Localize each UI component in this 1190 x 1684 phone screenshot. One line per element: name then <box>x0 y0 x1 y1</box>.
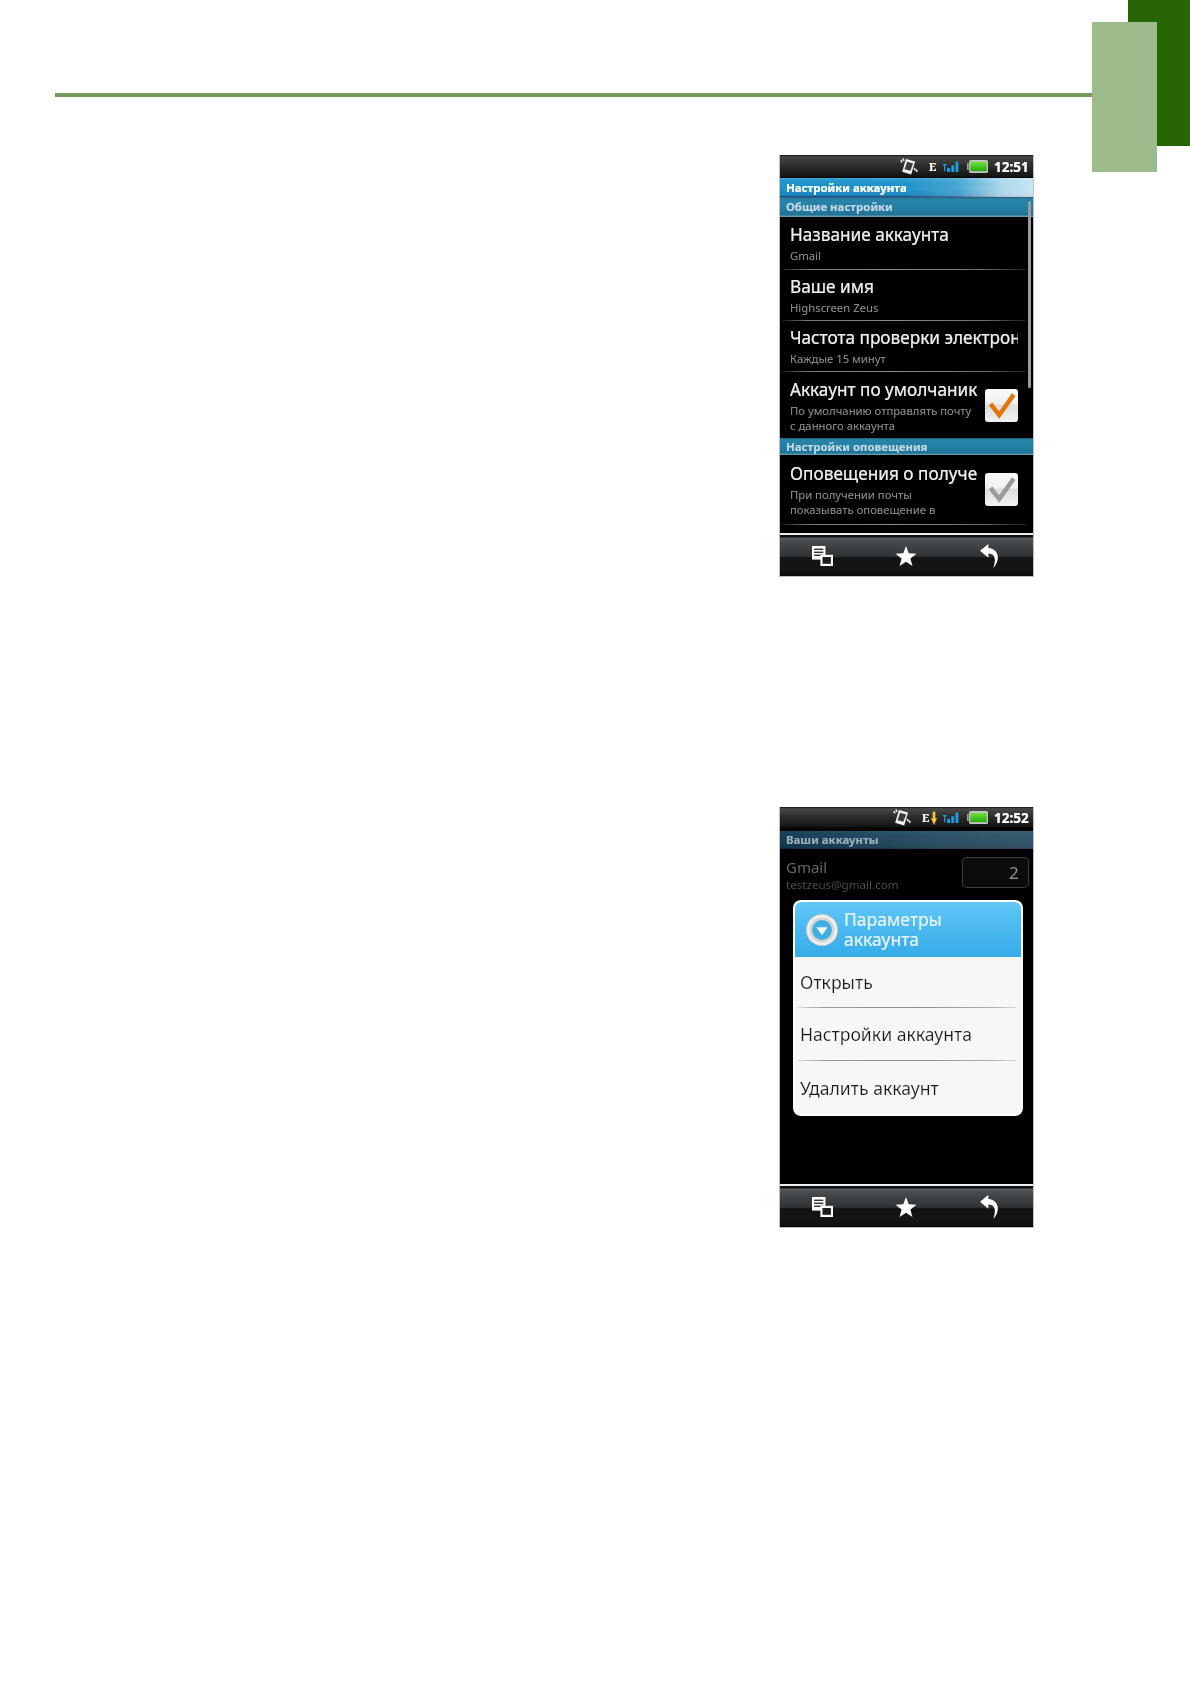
staticText: Ваши аккаунты <box>786 832 879 848</box>
staticText: Общие настройки <box>786 199 893 215</box>
staticText: с данного аккаунта <box>790 418 896 433</box>
staticText: показывать оповещение в <box>790 502 936 517</box>
button[interactable]: Название аккаунта <box>780 217 1033 269</box>
staticText: Название аккаунта <box>790 223 949 246</box>
staticText: Удалить аккаунт <box>800 1076 939 1100</box>
staticText: Каждые 15 минут <box>790 351 886 366</box>
staticText: Настройки аккаунта <box>786 180 907 196</box>
staticText: Аккаунт по умолчаник <box>790 378 978 401</box>
button[interactable]: Удалить аккаунт <box>795 1061 1021 1114</box>
button[interactable]: Favorites <box>888 538 924 574</box>
staticText: Ваше имя <box>790 275 874 298</box>
button[interactable]: Menu <box>804 1189 840 1225</box>
staticText: Highscreen Zeus <box>790 300 879 315</box>
staticText: Частота проверки электрон <box>790 326 1018 349</box>
staticText: 12:51 <box>994 158 1029 176</box>
staticText: При получении почты <box>790 487 912 502</box>
button[interactable]: Back <box>971 538 1007 574</box>
staticText: E <box>929 159 937 174</box>
button[interactable]: Back <box>971 1189 1007 1225</box>
button[interactable]: Menu <box>804 538 840 574</box>
staticText: 12:52 <box>994 809 1029 827</box>
button[interactable]: Оповещения о получе <box>780 455 1033 524</box>
staticText: 2 <box>1009 861 1019 884</box>
staticText: Gmail <box>786 857 828 877</box>
button[interactable]: Favorites <box>888 1189 924 1225</box>
staticText: Настройки аккаунта <box>800 1022 973 1046</box>
button[interactable]: Открыть <box>795 957 1021 1007</box>
staticText: Открыть <box>800 970 873 994</box>
staticText: Параметры аккаунта <box>844 907 942 952</box>
button[interactable]: Частота проверки электрон <box>780 321 1033 371</box>
staticText: Настройки оповещения <box>786 439 928 455</box>
button[interactable]: Параметры аккаунта <box>795 902 1021 957</box>
staticText: Gmail <box>790 248 821 263</box>
staticText: E <box>922 810 930 825</box>
button[interactable]: Настройки аккаунта <box>795 1008 1021 1060</box>
staticText: testzeus@gmail.com <box>786 877 899 893</box>
button[interactable]: Gmail <box>786 857 1029 893</box>
staticText: Оповещения о получе <box>790 462 978 485</box>
button[interactable]: Ваше имя <box>780 270 1033 320</box>
staticText: По умолчанию отправлять почту <box>790 403 972 418</box>
button[interactable]: Аккаунт по умолчаник <box>780 372 1033 438</box>
